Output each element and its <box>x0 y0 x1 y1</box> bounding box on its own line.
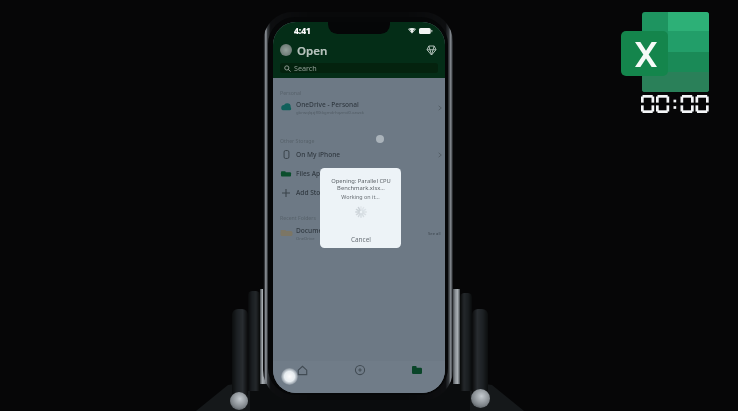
staticText: See all <box>428 231 441 237</box>
button[interactable]: Create <box>331 362 388 378</box>
button[interactable]: Account <box>280 44 292 56</box>
button[interactable]: Search <box>280 63 438 73</box>
staticText: OneDrive - Personal <box>296 100 359 109</box>
staticText: Opening: Parallel CPU Benchmark.xlsx... <box>331 177 391 192</box>
button[interactable]: OneDrive - Personal <box>273 98 445 117</box>
staticText: Recent Folders <box>280 214 316 221</box>
button[interactable]: Open <box>388 362 445 378</box>
staticText: On My iPhone <box>296 150 341 159</box>
staticText: gbrwqlqzjfl0tkgmdrhqzmd0.xzwxk <box>296 110 364 116</box>
button[interactable]: Premium <box>425 44 438 57</box>
button[interactable]: Add Storage <box>273 183 445 202</box>
staticText: 4:41 <box>294 25 311 37</box>
button[interactable]: Documents <box>273 224 445 243</box>
staticText: Add Storage <box>296 188 335 197</box>
button[interactable]: Cancel <box>323 230 398 248</box>
staticText: OneDrive <box>296 236 315 242</box>
staticText: Documents <box>296 226 333 235</box>
button[interactable]: Home <box>273 362 331 378</box>
staticText: Cancel <box>351 235 371 244</box>
staticText: Other Storage <box>280 137 315 144</box>
staticText: Open <box>297 43 328 57</box>
button[interactable]: See all <box>428 231 441 237</box>
staticText: Personal <box>280 89 302 96</box>
staticText: Search <box>294 63 317 73</box>
staticText: Files App <box>296 169 325 178</box>
button[interactable]: On My iPhone <box>273 145 445 164</box>
button[interactable]: Files App <box>273 164 445 183</box>
staticText: Working on it... <box>341 193 380 200</box>
